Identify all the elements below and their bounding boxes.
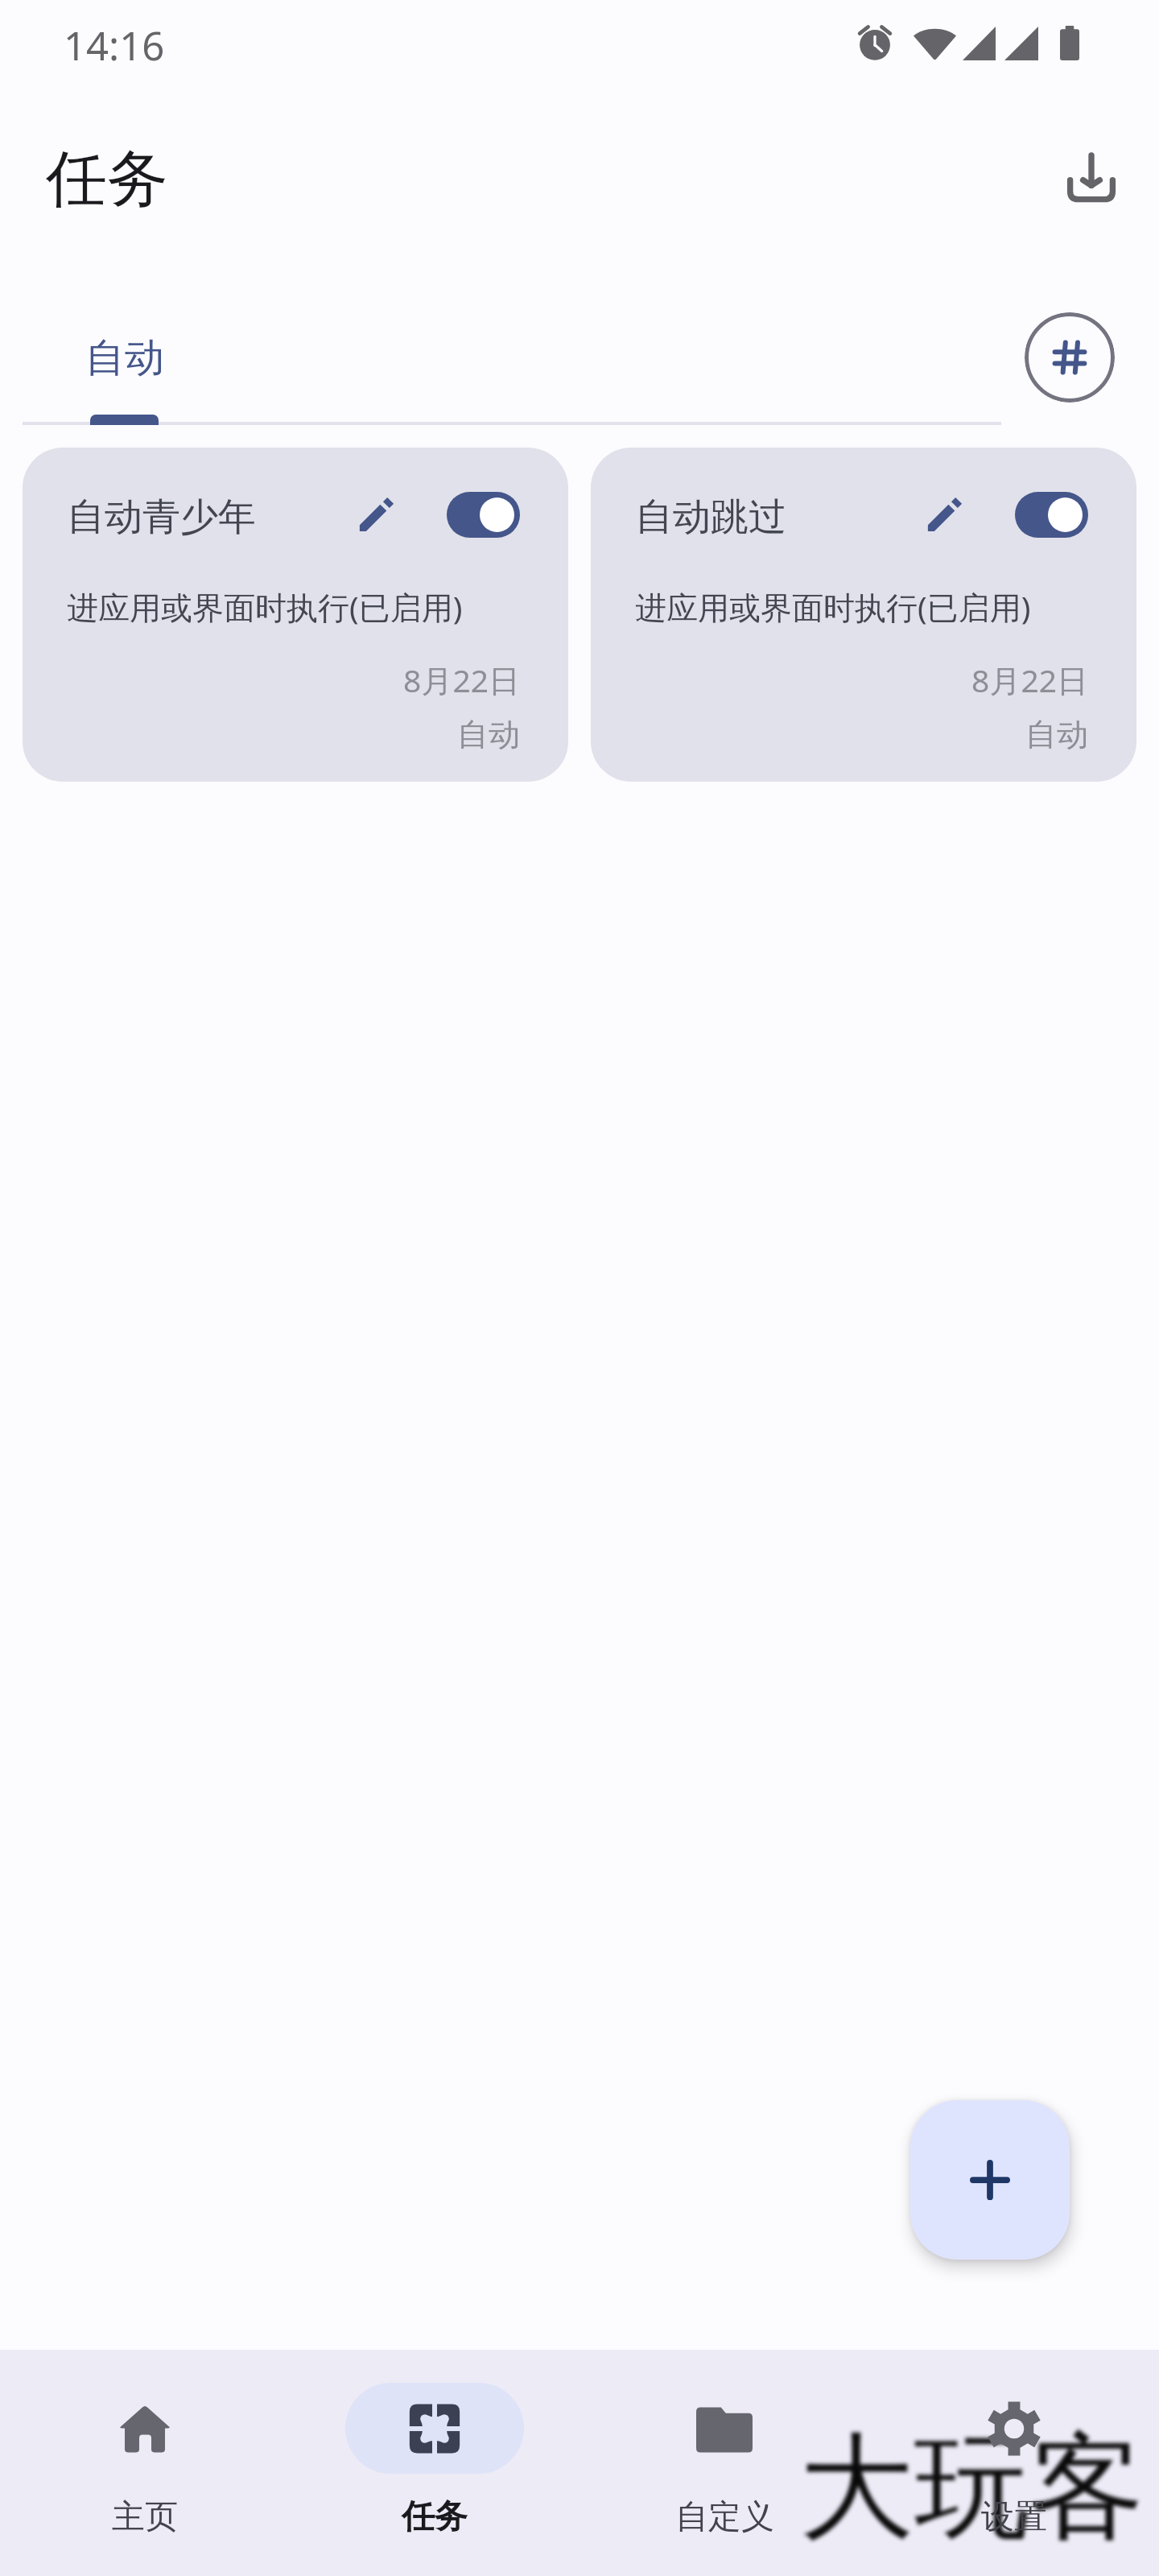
staticText: 主页 <box>112 2496 178 2538</box>
staticText: 自动 <box>23 715 520 754</box>
staticText: 自动跳过 <box>635 493 786 541</box>
button[interactable]: 设置 <box>869 2350 1159 2576</box>
staticText: 进应用或界面时执行(已启用) <box>67 585 463 628</box>
button[interactable]: 自动跳过 <box>591 448 1136 782</box>
staticText: 自定义 <box>675 2496 774 2538</box>
button[interactable]: Edit <box>350 488 403 541</box>
button[interactable]: Tags <box>1025 312 1115 402</box>
button[interactable]: Add <box>910 2100 1070 2260</box>
staticText: 自动青少年 <box>67 493 256 541</box>
staticText: 任务 <box>46 141 168 218</box>
button[interactable]: 自动青少年 <box>23 448 568 782</box>
staticText: 设置 <box>981 2496 1047 2538</box>
button[interactable]: 自动 <box>23 280 225 425</box>
button[interactable]: Toggle <box>1015 492 1088 538</box>
button[interactable]: Toggle <box>447 492 520 538</box>
staticText: 自动 <box>85 333 164 383</box>
staticText: 大玩客 <box>799 2416 1145 2561</box>
button[interactable]: Edit <box>918 488 971 541</box>
staticText: 8月22日 <box>591 658 1088 701</box>
staticText: 8月22日 <box>23 658 520 701</box>
staticText: 自动 <box>591 715 1088 754</box>
button[interactable]: Download <box>1047 133 1136 221</box>
staticText: 14:16 <box>64 19 165 72</box>
button[interactable]: 任务 <box>290 2350 579 2576</box>
staticText: 进应用或界面时执行(已启用) <box>635 585 1031 628</box>
button[interactable]: 自定义 <box>579 2350 869 2576</box>
staticText: 任务 <box>402 2496 468 2538</box>
button[interactable]: 主页 <box>0 2350 290 2576</box>
